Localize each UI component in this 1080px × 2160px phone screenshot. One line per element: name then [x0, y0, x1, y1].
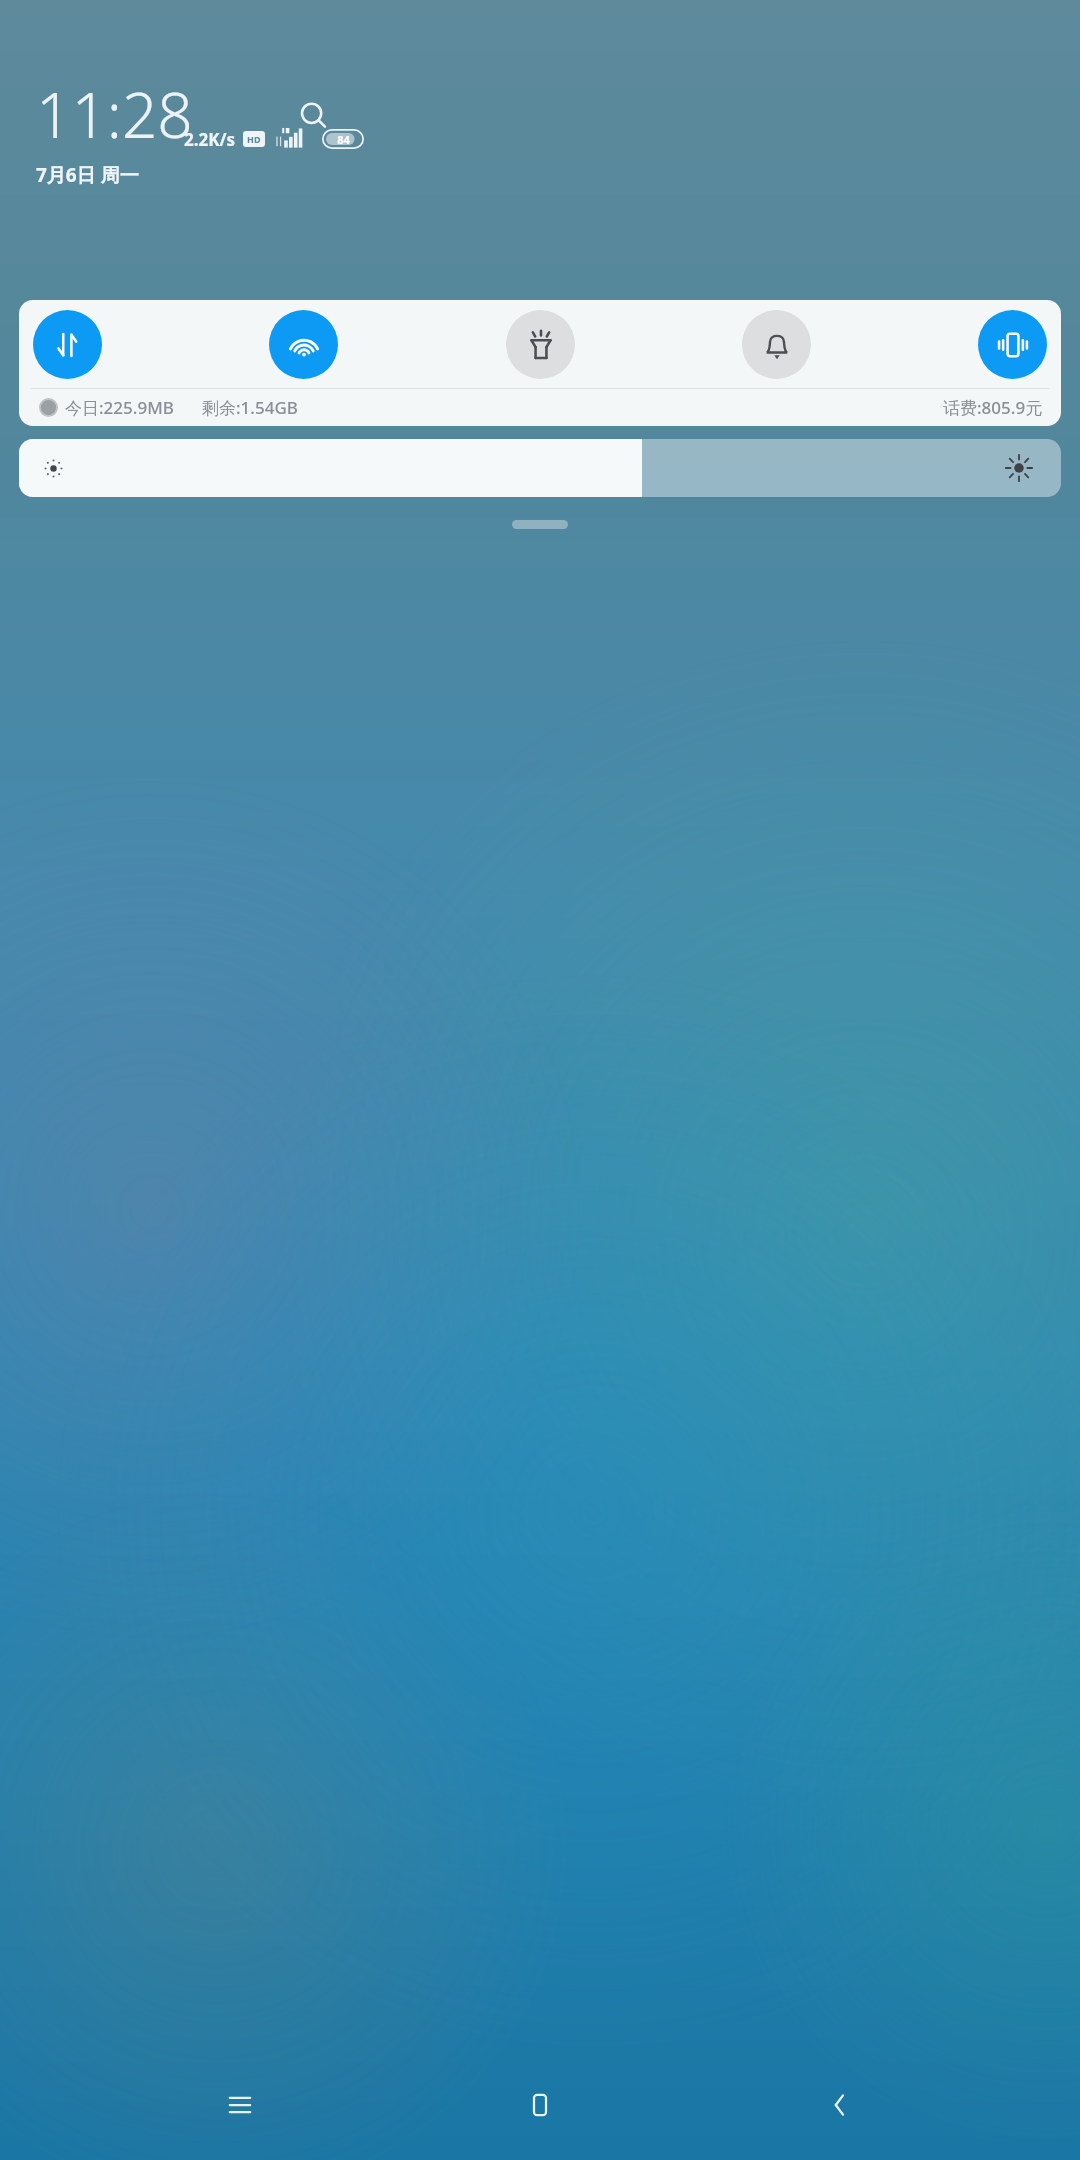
staticText: 剩余:1.54GB: [202, 396, 298, 419]
button[interactable]: Mobile data: [33, 310, 102, 379]
staticText: HD: [247, 133, 261, 145]
button[interactable]: Recents: [180, 2065, 300, 2145]
button[interactable]: Brightness: [19, 439, 1061, 497]
staticText: 7月6日 周一: [36, 162, 139, 188]
button[interactable]: Search: [286, 88, 342, 144]
button[interactable]: Ring: [742, 310, 811, 379]
button[interactable]: Back: [780, 2065, 900, 2145]
staticText: 今日:225.9MB: [65, 396, 174, 419]
staticText: 84: [337, 132, 350, 147]
button[interactable]: Vibrate: [978, 310, 1047, 379]
button[interactable]: Home: [480, 2065, 600, 2145]
button[interactable]: Expand: [512, 520, 568, 529]
staticText: 11:28: [36, 72, 193, 156]
staticText: 2.2K/s: [184, 128, 236, 151]
button[interactable]: Wi-Fi: [269, 310, 338, 379]
staticText: 话费:805.9元: [943, 396, 1043, 419]
button[interactable]: Flashlight: [506, 310, 575, 379]
